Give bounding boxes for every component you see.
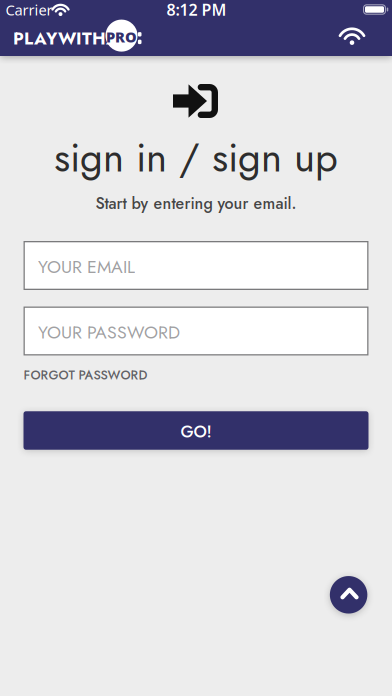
staticText: FORGOT PASSWORD (23, 366, 147, 384)
button[interactable]: Wi-Fi (340, 28, 364, 45)
button[interactable]: GO! (23, 411, 368, 450)
staticText: Carrier (5, 0, 52, 20)
staticText: sign in / sign up (54, 129, 338, 186)
staticText: Start by entering your email. (95, 192, 296, 215)
button[interactable]: Scroll to top (330, 576, 367, 613)
staticText: YOUR PASSWORD (38, 319, 180, 345)
staticText: YOUR EMAIL (38, 254, 135, 280)
button[interactable]: FORGOT PASSWORD (23, 366, 147, 384)
staticText: PRO (106, 27, 137, 47)
staticText: GO! (180, 420, 211, 444)
staticText: PLAYWITHA (13, 26, 119, 51)
staticText: 8:12 PM (166, 0, 226, 20)
button[interactable]: YOUR EMAIL (23, 241, 368, 290)
button[interactable]: YOUR PASSWORD (23, 306, 368, 355)
